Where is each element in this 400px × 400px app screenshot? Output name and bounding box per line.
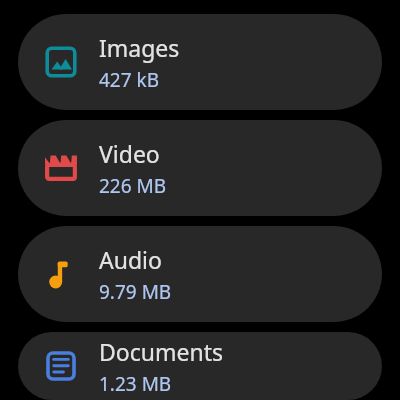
button[interactable]: Documents: [18, 332, 382, 400]
staticText: Video: [99, 138, 160, 169]
staticText: 226 MB: [99, 173, 167, 199]
staticText: Images: [99, 32, 180, 63]
other: Documents: [42, 347, 80, 385]
button[interactable]: Video: [18, 120, 382, 216]
staticText: 1.23 MB: [99, 371, 172, 397]
button[interactable]: Audio: [18, 226, 382, 322]
other: Images: [42, 43, 80, 81]
staticText: Documents: [99, 336, 223, 367]
staticText: Audio: [99, 244, 162, 275]
staticText: 9.79 MB: [99, 279, 172, 305]
other: Audio: [42, 255, 80, 293]
button[interactable]: Images: [18, 14, 382, 110]
other: Video: [42, 149, 80, 187]
staticText: 427 kB: [99, 67, 160, 93]
